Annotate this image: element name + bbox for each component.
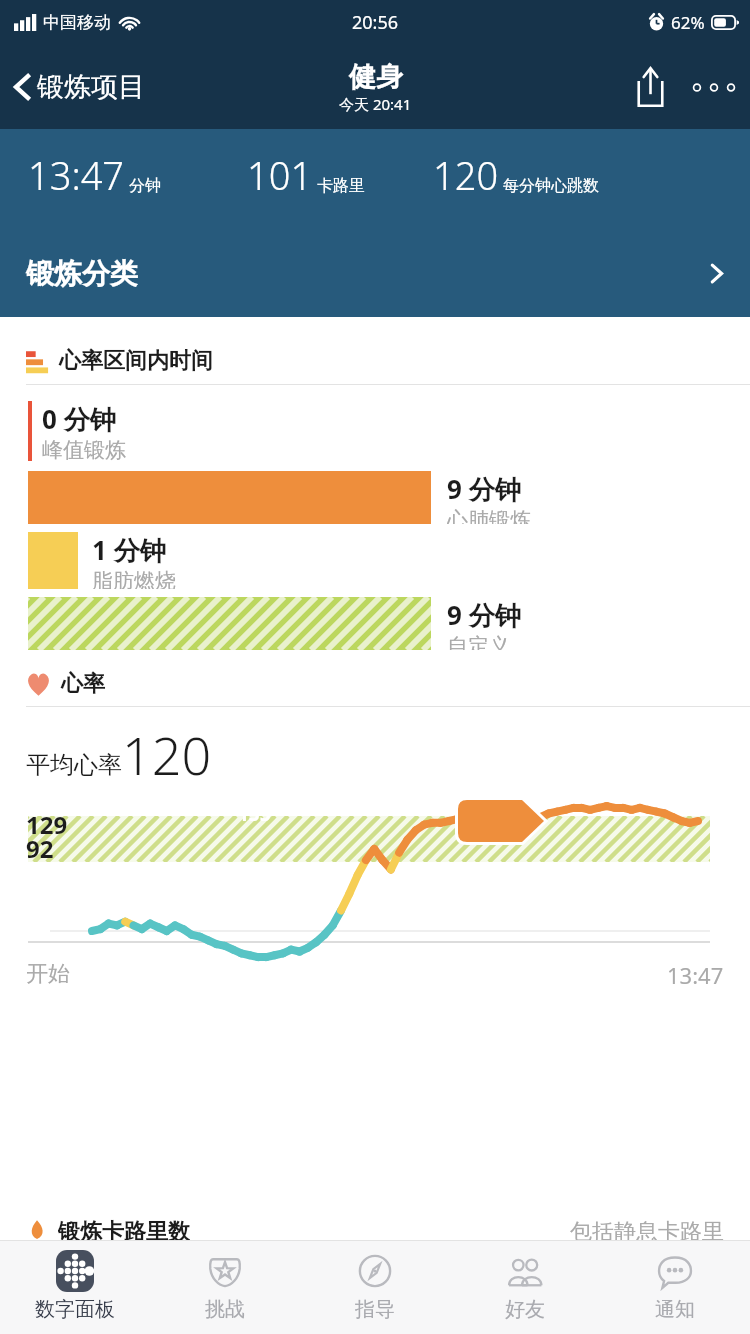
staticText: 129 (26, 808, 68, 841)
staticText: 开始 (26, 960, 70, 988)
staticText: 锻炼分类 (26, 256, 138, 291)
button[interactable]: 挑战 (150, 1241, 300, 1334)
staticText: 13:47 (28, 149, 125, 201)
staticText: 62% (671, 11, 705, 34)
staticText: 中国移动 (43, 12, 111, 33)
staticText: 自定义 (447, 633, 510, 650)
button[interactable]: 锻炼项目 (0, 62, 157, 112)
button[interactable]: 数字面板 (0, 1241, 150, 1334)
button[interactable]: More options (682, 55, 746, 119)
staticText: 数字面板 (35, 1297, 115, 1322)
button[interactable]: 通知 (600, 1241, 750, 1334)
staticText: 平均心率 (26, 750, 122, 780)
staticText: 13:47 (667, 960, 724, 990)
staticText: 卡路里 (317, 176, 365, 196)
staticText: 心率 (61, 670, 105, 698)
staticText: 每分钟心跳数 (503, 176, 599, 196)
staticText: 锻炼卡路里数 (58, 1218, 190, 1240)
staticText: 92 (26, 832, 54, 865)
staticText: 分钟 (129, 176, 161, 196)
button[interactable]: 锻炼分类 (0, 250, 750, 317)
staticText: 1 分钟 (92, 532, 166, 568)
staticText: 心率区间内时间 (59, 347, 213, 375)
staticText: 心肺锻炼 (447, 507, 531, 524)
staticText: 155 (238, 801, 271, 827)
staticText: 9 分钟 (447, 597, 521, 633)
staticText: 指导 (355, 1297, 395, 1322)
staticText: 脂肪燃烧 (92, 568, 176, 589)
staticText: 通知 (655, 1297, 695, 1322)
button[interactable]: 锻炼卡路里数 (0, 1218, 750, 1240)
button[interactable]: 指导 (300, 1241, 450, 1334)
staticText: 今天 20:41 (339, 94, 412, 114)
staticText: 101 (247, 149, 313, 201)
staticText: 20:56 (352, 10, 399, 35)
staticText: 包括静息卡路里 (570, 1218, 724, 1240)
button[interactable]: Share (618, 55, 682, 119)
staticText: 120 (433, 149, 499, 201)
staticText: 0 分钟 (42, 401, 116, 437)
staticText: 好友 (505, 1297, 545, 1322)
staticText: 峰值锻炼 (42, 437, 126, 461)
staticText: 9 分钟 (447, 471, 521, 507)
button[interactable]: 好友 (450, 1241, 600, 1334)
staticText: 健身 (349, 60, 403, 94)
staticText: 120 (122, 719, 212, 790)
staticText: 挑战 (205, 1297, 245, 1322)
staticText: 锻炼项目 (37, 70, 145, 104)
